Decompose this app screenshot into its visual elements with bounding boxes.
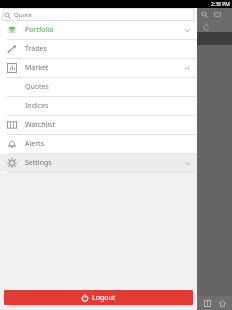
- staticText: Portfolio: [25, 25, 54, 35]
- button[interactable]: Filter: [213, 10, 222, 19]
- staticText: 2:38 PM: [211, 1, 230, 8]
- button[interactable]: Home: [217, 298, 227, 308]
- staticText: Quotes: [25, 82, 49, 92]
- button[interactable]: Alerts: [0, 135, 197, 153]
- staticText: Indices: [25, 101, 49, 111]
- button[interactable]: Portfolio: [0, 21, 197, 39]
- button[interactable]: Recents: [202, 298, 212, 308]
- button[interactable]: Refresh: [202, 23, 210, 31]
- staticText: Watchlist: [25, 120, 56, 130]
- button[interactable]: Watchlist: [0, 116, 197, 134]
- staticText: Quote: [14, 11, 32, 19]
- button[interactable]: Indices: [0, 97, 197, 115]
- button[interactable]: Search: [200, 10, 209, 19]
- staticText: Market: [25, 63, 49, 73]
- staticText: Alerts: [25, 139, 44, 149]
- button[interactable]: Quotes: [0, 78, 197, 96]
- button[interactable]: Market: [0, 59, 197, 77]
- button[interactable]: Logout: [4, 290, 193, 305]
- button[interactable]: Settings: [0, 154, 197, 172]
- staticText: Trades: [25, 44, 47, 54]
- staticText: Logout: [92, 293, 116, 303]
- staticText: Settings: [25, 158, 52, 168]
- button[interactable]: Quote: [0, 8, 197, 21]
- button[interactable]: Trades: [0, 40, 197, 58]
